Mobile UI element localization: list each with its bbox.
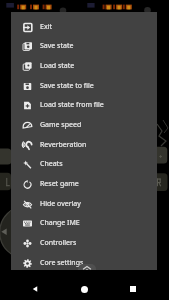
staticText: Load state from file [40, 100, 104, 110]
button[interactable]: Load state [11, 56, 157, 76]
staticText: Controllers [40, 238, 77, 248]
button[interactable]: Reverberation [11, 135, 157, 155]
button[interactable]: Hide overlay [11, 194, 157, 214]
button[interactable]: Save state [11, 36, 157, 56]
button[interactable]: Home [72, 277, 96, 300]
staticText: Exit [40, 22, 52, 32]
button[interactable]: Core settings [11, 253, 157, 270]
staticText: Load state [40, 61, 75, 71]
staticText: Save state [40, 41, 74, 51]
button[interactable]: Reset game [11, 174, 157, 194]
button[interactable]: Collapse menu [78, 264, 96, 274]
button[interactable]: Game speed [11, 115, 157, 135]
staticText: Change IME [40, 218, 80, 228]
button[interactable]: Load state from file [11, 95, 157, 115]
staticText: Save state to file [40, 81, 94, 91]
button[interactable]: Save state to file [11, 76, 157, 96]
button[interactable]: Controllers [11, 233, 157, 253]
staticText: Reverberation [40, 140, 87, 150]
staticText: Reset game [40, 179, 79, 189]
button[interactable]: Recent apps [121, 277, 145, 300]
staticText: Cheats [40, 159, 63, 169]
staticText: Hide overlay [40, 199, 81, 209]
button[interactable]: Exit [11, 17, 157, 37]
button[interactable]: Change IME [11, 213, 157, 233]
button[interactable]: Cheats [11, 154, 157, 174]
button[interactable]: Back [23, 277, 47, 300]
staticText: Core settings [40, 258, 84, 268]
staticText: Game speed [40, 120, 82, 130]
